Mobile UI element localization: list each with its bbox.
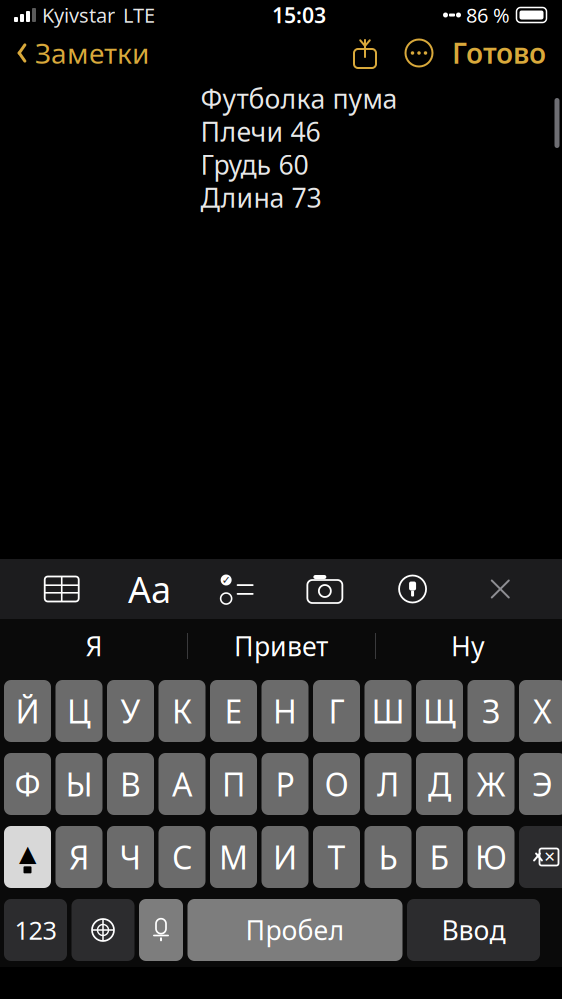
button[interactable]: Ы (55, 753, 102, 815)
button[interactable]: Б (416, 826, 463, 888)
staticText: Т (327, 836, 345, 878)
button[interactable]: З (467, 680, 514, 742)
button[interactable]: Я (55, 826, 102, 888)
button[interactable]: Share (350, 36, 380, 70)
staticText: И (273, 836, 297, 878)
button[interactable]: Т (313, 826, 360, 888)
staticText: Х (533, 690, 552, 732)
staticText: Длина 73 (200, 180, 321, 215)
button[interactable]: Dictation (139, 899, 183, 961)
staticText: Заметки (35, 34, 149, 72)
button[interactable]: Camera (299, 559, 351, 619)
button[interactable]: Пробел (187, 899, 402, 961)
staticText: Готово (452, 34, 546, 72)
button[interactable]: Ф (4, 753, 51, 815)
staticText: Ж (476, 763, 505, 805)
staticText: Kyivstar (42, 2, 115, 28)
button[interactable]: Заметки (0, 30, 159, 76)
button[interactable]: О (313, 753, 360, 815)
button[interactable]: Ввод (407, 899, 540, 961)
staticText: Б (429, 836, 449, 878)
button[interactable]: Ч (107, 826, 154, 888)
staticText: 86 % (466, 2, 510, 28)
button[interactable]: Й (4, 680, 51, 742)
staticText: ✕ (543, 849, 555, 865)
staticText: Ю (475, 836, 507, 878)
button[interactable]: А (158, 753, 205, 815)
button[interactable]: Ш (364, 680, 411, 742)
staticText: Ч (119, 836, 141, 878)
button[interactable]: М (210, 826, 257, 888)
button[interactable]: Л (364, 753, 411, 815)
button[interactable]: Ж (467, 753, 514, 815)
staticText: Плечи 46 (200, 114, 320, 149)
staticText: Я (85, 628, 102, 664)
staticText: Г (328, 690, 344, 732)
staticText: Ш (371, 690, 404, 732)
staticText: Ф (14, 763, 40, 805)
staticText: Н (273, 690, 297, 732)
button[interactable]: Ну (374, 619, 561, 673)
staticText: Э (532, 763, 553, 805)
staticText: Футболка пума (200, 81, 397, 116)
staticText: Щ (423, 690, 456, 732)
staticText: Пробел (245, 912, 344, 948)
button[interactable]: Г (313, 680, 360, 742)
staticText: LTE (123, 2, 155, 28)
button[interactable]: Text formatting (123, 559, 175, 619)
button[interactable]: More options (404, 38, 434, 68)
staticText: У (120, 690, 140, 732)
button[interactable]: 123 (4, 899, 67, 961)
button[interactable]: В (107, 753, 154, 815)
staticText: В (120, 763, 141, 805)
button[interactable]: Ю (467, 826, 514, 888)
staticText: Р (275, 763, 294, 805)
button[interactable]: Привет (187, 619, 374, 673)
staticText: А (172, 763, 192, 805)
staticText: О (324, 763, 348, 805)
staticText: Aa (128, 565, 171, 613)
button[interactable]: Д (416, 753, 463, 815)
staticText: Грудь 60 (200, 147, 308, 182)
button[interactable]: Р (261, 753, 308, 815)
button[interactable]: Next keyboard (71, 899, 134, 961)
button[interactable]: И (261, 826, 308, 888)
staticText: К (172, 690, 192, 732)
staticText: Д (428, 763, 451, 805)
button[interactable]: У (107, 680, 154, 742)
button[interactable]: Э (519, 753, 562, 815)
button[interactable]: Х (519, 680, 562, 742)
button[interactable]: Я (0, 619, 187, 673)
button[interactable]: Hide keyboard (474, 559, 526, 619)
button[interactable]: Markup (387, 559, 439, 619)
staticText: М (219, 836, 248, 878)
button[interactable]: Insert table (36, 559, 88, 619)
staticText: ✓ (222, 574, 231, 586)
button[interactable]: К (158, 680, 205, 742)
button[interactable]: Е (210, 680, 257, 742)
button[interactable]: П (210, 753, 257, 815)
button[interactable]: Н (261, 680, 308, 742)
staticText: Я (69, 836, 89, 878)
button[interactable]: Checklist (211, 559, 263, 619)
button[interactable]: С (158, 826, 205, 888)
staticText: Привет (234, 628, 328, 664)
staticText: З (482, 690, 500, 732)
button[interactable]: Щ (416, 680, 463, 742)
button[interactable]: Shift (4, 826, 51, 888)
staticText: ▲ (19, 841, 36, 866)
staticText: Ы (65, 763, 92, 805)
button[interactable]: Готово (434, 30, 562, 76)
staticText: 15:03 (272, 1, 326, 29)
staticText: Ц (67, 690, 91, 732)
staticText: П (222, 763, 245, 805)
staticText: Е (224, 690, 242, 732)
staticText: Ь (378, 836, 397, 878)
staticText: Й (15, 690, 39, 732)
staticText: С (172, 836, 192, 878)
button[interactable]: Delete (519, 826, 562, 888)
button[interactable]: Ь (364, 826, 411, 888)
staticText: Ввод (441, 912, 505, 948)
button[interactable]: Ц (55, 680, 102, 742)
staticText: 123 (14, 913, 56, 947)
